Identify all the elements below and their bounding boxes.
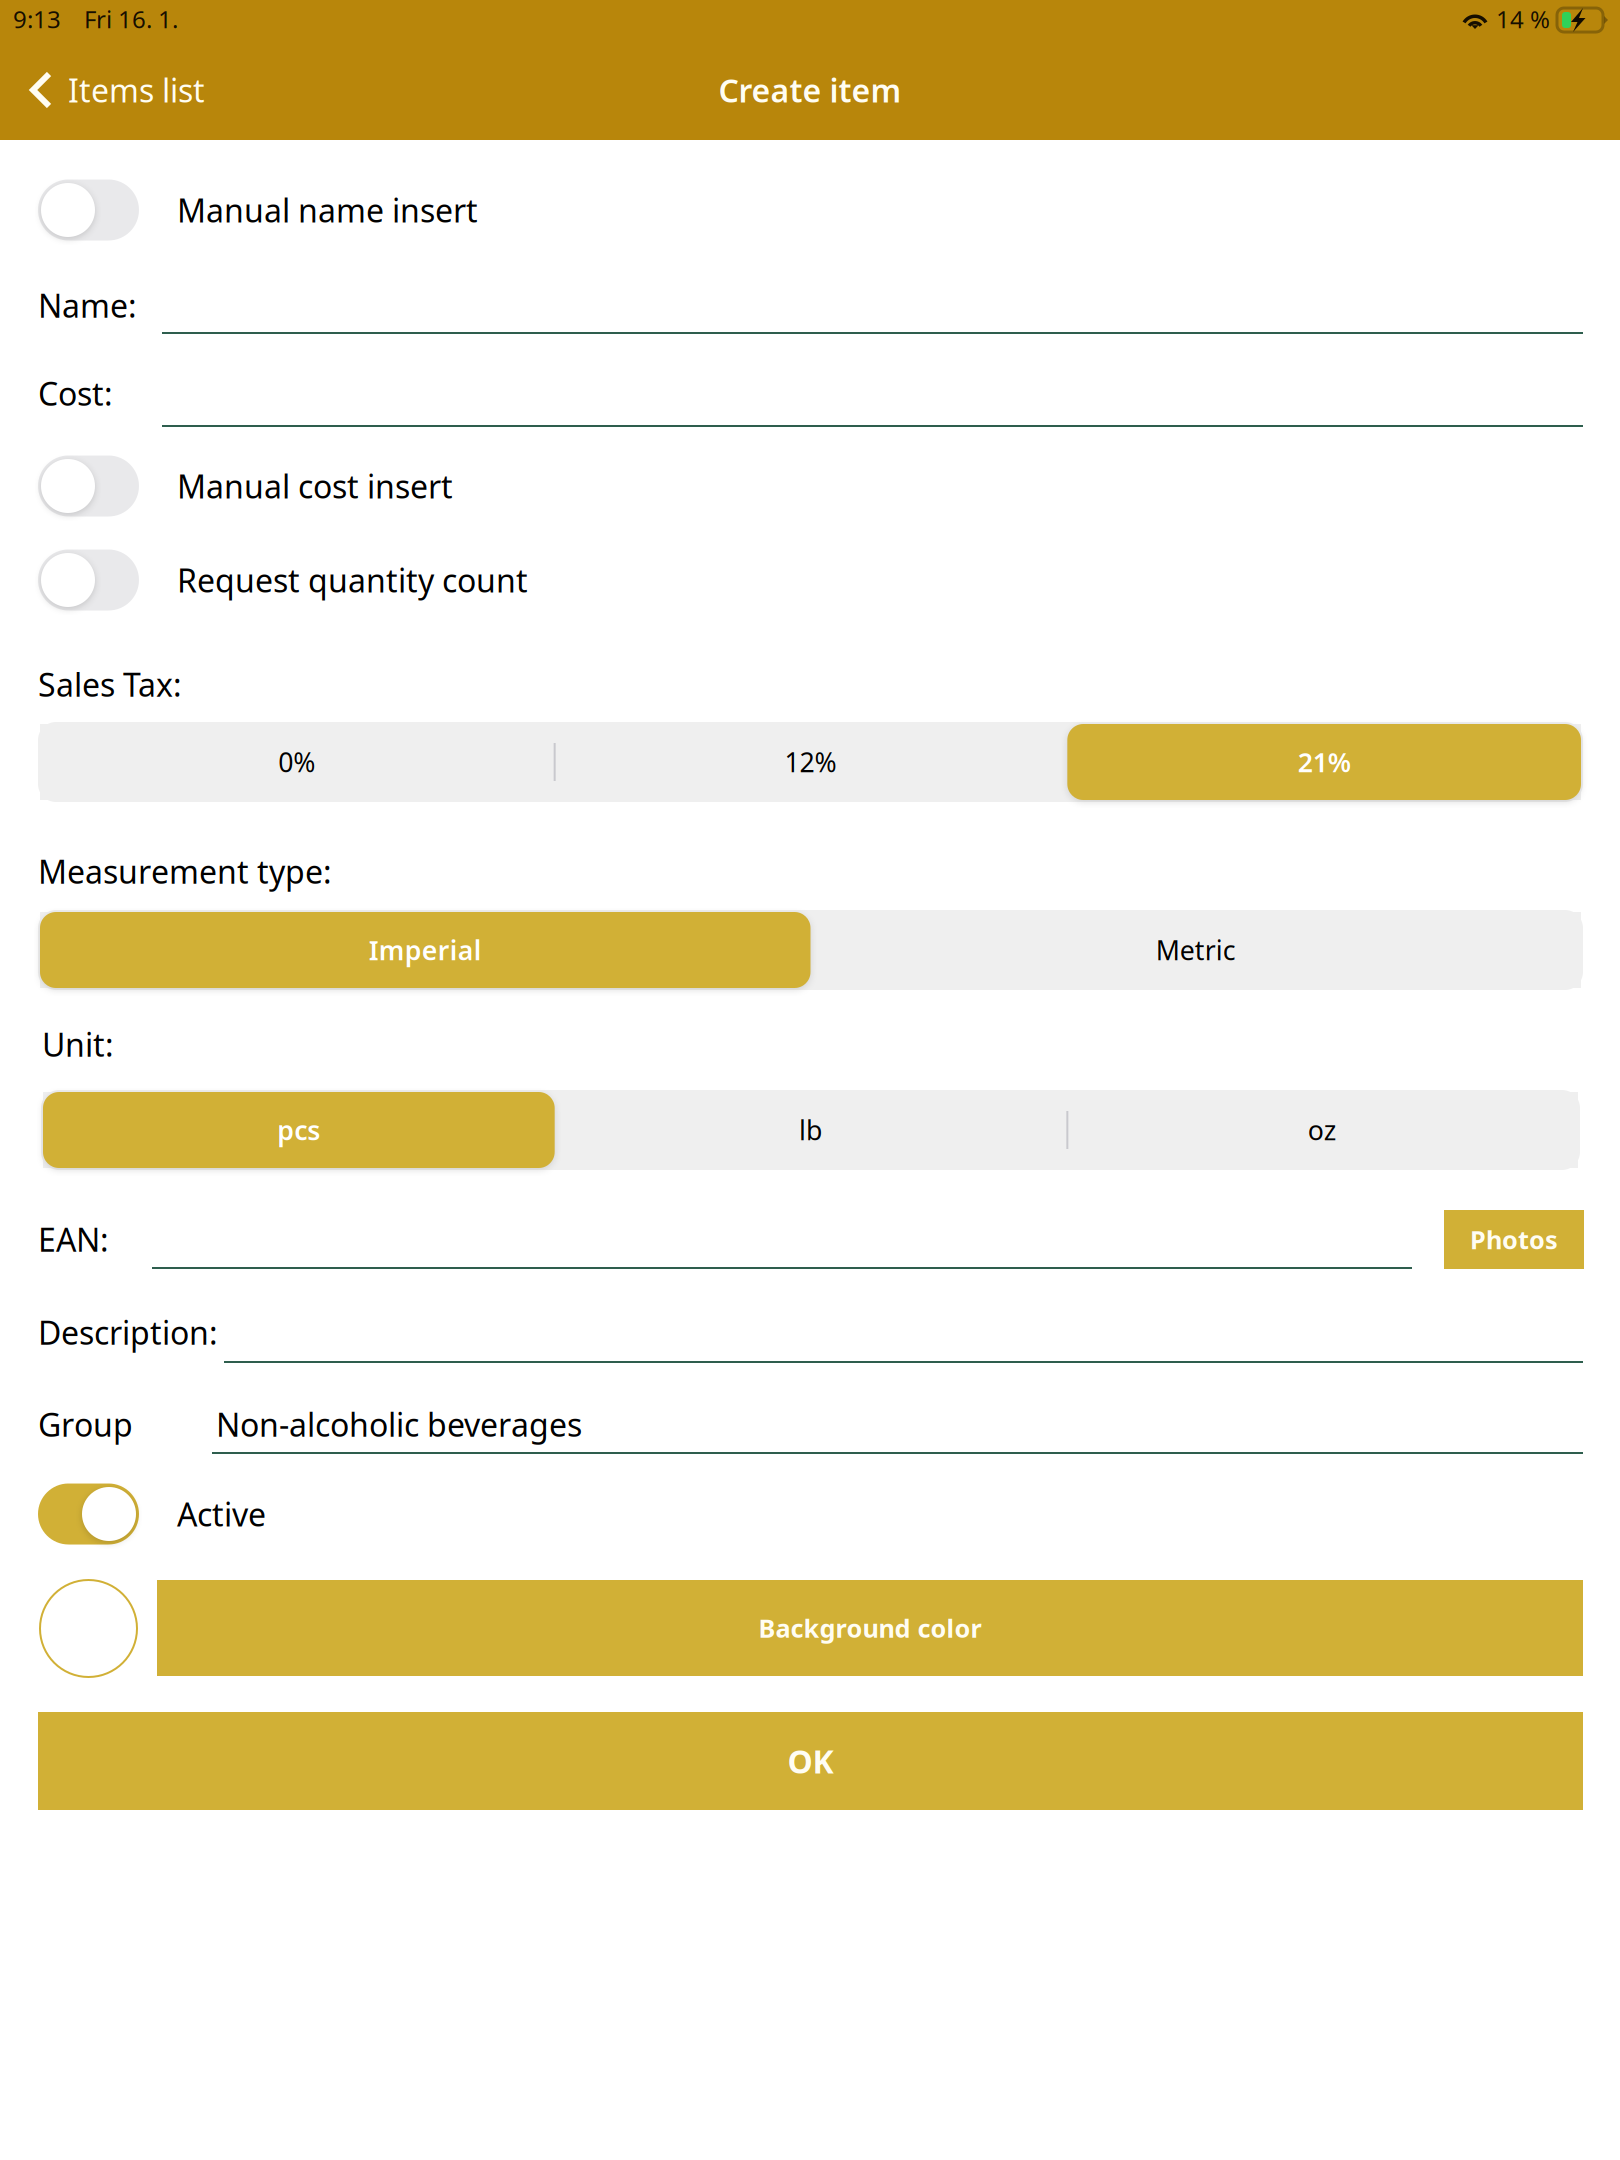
staticText: Active bbox=[177, 1493, 266, 1535]
staticText: Cost: bbox=[38, 372, 113, 414]
button[interactable]: Group bbox=[212, 1408, 1583, 1454]
button[interactable]: 12% bbox=[554, 724, 1067, 800]
staticText: Background color bbox=[758, 1611, 981, 1645]
button[interactable]: 21% bbox=[1067, 724, 1581, 800]
button[interactable]: Request quantity count bbox=[38, 550, 1583, 610]
button[interactable]: Non-alcoholic beverages bbox=[216, 1403, 582, 1445]
staticText: Unit: bbox=[42, 1023, 114, 1065]
button[interactable]: pcs bbox=[43, 1092, 555, 1168]
button[interactable]: Cost bbox=[162, 381, 1583, 427]
button[interactable]: Description bbox=[224, 1317, 1583, 1363]
button[interactable]: oz bbox=[1066, 1092, 1578, 1168]
staticText: Metric bbox=[1156, 932, 1236, 968]
staticText: Group bbox=[38, 1403, 133, 1445]
staticText: lb bbox=[799, 1112, 822, 1148]
staticText: Sales Tax: bbox=[38, 663, 182, 705]
button[interactable]: lb bbox=[555, 1092, 1066, 1168]
button[interactable]: Manual name insert bbox=[38, 180, 1583, 240]
staticText: Manual name insert bbox=[177, 189, 478, 231]
staticText: pcs bbox=[277, 1112, 320, 1148]
staticText: 21% bbox=[1298, 744, 1351, 780]
staticText: Items list bbox=[68, 69, 205, 111]
button[interactable]: OK bbox=[38, 1712, 1583, 1810]
staticText: Imperial bbox=[369, 932, 482, 968]
staticText: OK bbox=[787, 1740, 833, 1782]
button[interactable]: EAN bbox=[152, 1223, 1412, 1269]
button[interactable]: Active bbox=[38, 1484, 1583, 1544]
staticText: 0% bbox=[278, 744, 315, 780]
staticText: Fri 16. 1. bbox=[84, 3, 178, 35]
staticText: Request quantity count bbox=[177, 559, 528, 601]
button[interactable]: 0% bbox=[40, 724, 554, 800]
button[interactable]: Imperial bbox=[40, 912, 810, 988]
button[interactable]: Current colour swatch bbox=[40, 1580, 137, 1677]
staticText: Photos bbox=[1470, 1223, 1558, 1256]
staticText: EAN: bbox=[38, 1218, 109, 1260]
staticText: 9:13 bbox=[13, 3, 61, 35]
button[interactable]: Background color bbox=[157, 1580, 1583, 1676]
button[interactable]: Photos bbox=[1444, 1210, 1584, 1269]
staticText: Create item bbox=[718, 69, 901, 111]
button[interactable]: Name bbox=[162, 288, 1583, 334]
staticText: Description: bbox=[38, 1311, 218, 1353]
button[interactable]: Metric bbox=[810, 912, 1581, 988]
staticText: Non-alcoholic beverages bbox=[216, 1403, 582, 1445]
button[interactable]: Items list bbox=[14, 46, 219, 134]
staticText: Name: bbox=[38, 284, 137, 326]
staticText: 14 % bbox=[1496, 3, 1550, 35]
staticText: 12% bbox=[784, 744, 836, 780]
button[interactable]: Manual cost insert bbox=[38, 456, 1583, 516]
staticText: oz bbox=[1308, 1112, 1337, 1148]
staticText: Manual cost insert bbox=[177, 465, 453, 507]
staticText: Measurement type: bbox=[38, 850, 332, 892]
